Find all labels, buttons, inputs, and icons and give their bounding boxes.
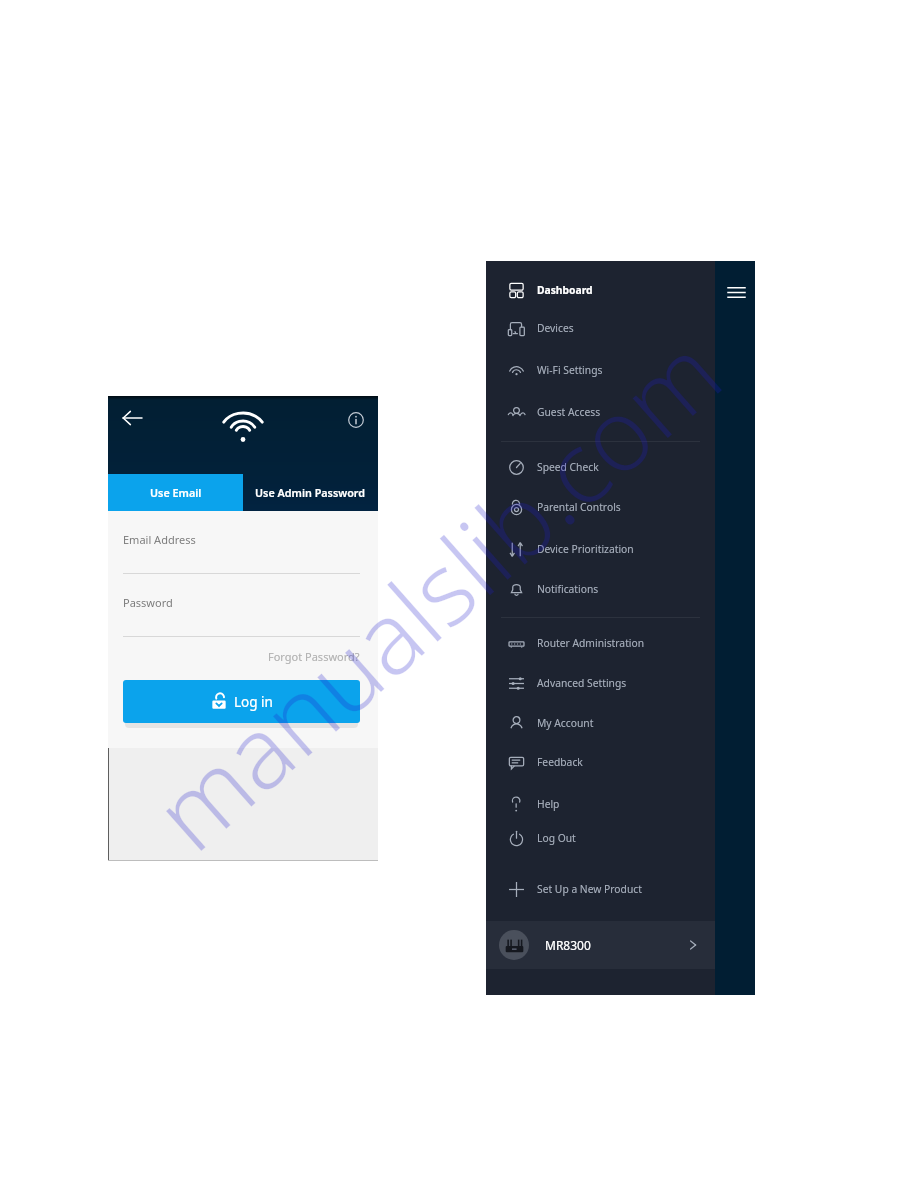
button[interactable]: Feedback xyxy=(486,744,715,780)
button[interactable]: Dashboard xyxy=(486,272,715,308)
staticText: Feedback xyxy=(537,755,583,769)
button[interactable]: Parental Controls xyxy=(486,489,715,525)
button[interactable]: MR8300 xyxy=(486,921,715,969)
button[interactable]: Log Out xyxy=(486,820,715,856)
staticText: Guest Access xyxy=(537,405,601,419)
button[interactable]: Device Prioritization xyxy=(486,531,715,567)
staticText: Use Admin Password xyxy=(255,485,366,500)
staticText: Log Out xyxy=(537,831,576,845)
button[interactable]: Set Up a New Product xyxy=(486,871,715,907)
staticText: My Account xyxy=(537,716,594,730)
staticText: MR8300 xyxy=(545,937,591,953)
button[interactable]: Devices xyxy=(486,310,715,346)
staticText: Notifications xyxy=(537,582,599,596)
staticText: Wi-Fi Settings xyxy=(537,363,603,377)
staticText: Router Administration xyxy=(537,636,645,650)
staticText: Log in xyxy=(234,693,273,711)
staticText: Set Up a New Product xyxy=(537,882,642,896)
button[interactable]: Router Administration xyxy=(486,625,715,661)
staticText: Devices xyxy=(537,321,574,335)
button[interactable]: Guest Access xyxy=(486,394,715,430)
button[interactable]: My Account xyxy=(486,705,715,741)
button[interactable]: Info xyxy=(342,406,370,434)
staticText: Help xyxy=(537,797,560,811)
staticText: Use Email xyxy=(150,485,202,500)
staticText: Parental Controls xyxy=(537,500,621,514)
button[interactable]: Forgot Password? xyxy=(108,646,360,666)
button[interactable]: Notifications xyxy=(486,571,715,607)
staticText: Device Prioritization xyxy=(537,542,634,556)
button[interactable]: Advanced Settings xyxy=(486,665,715,701)
staticText: Dashboard xyxy=(537,283,593,297)
button[interactable]: Use Email xyxy=(108,474,243,511)
button[interactable]: Log in xyxy=(123,680,360,723)
staticText: Advanced Settings xyxy=(537,676,627,690)
button[interactable]: Back xyxy=(117,403,147,433)
staticText: Password xyxy=(123,595,173,610)
button[interactable]: Help xyxy=(486,786,715,822)
button[interactable]: Menu xyxy=(723,279,749,305)
staticText: Email Address xyxy=(123,532,196,547)
staticText: Speed Check xyxy=(537,460,599,474)
button[interactable]: Wi-Fi Settings xyxy=(486,352,715,388)
button[interactable]: Speed Check xyxy=(486,449,715,485)
staticText: Forgot Password? xyxy=(268,649,360,664)
button[interactable]: Use Admin Password xyxy=(243,474,378,511)
